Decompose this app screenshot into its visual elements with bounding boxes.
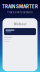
staticText: TRAIN SMARTER xyxy=(2,4,38,9)
staticText: Workout xyxy=(13,22,26,26)
staticText: Track every session xyxy=(7,11,33,14)
